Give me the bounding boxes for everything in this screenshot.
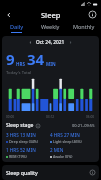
button[interactable]: 3 HRS 13 MIN [6,132,50,144]
staticText: 3 HRS 13 MIN [6,132,36,138]
staticText: HRS [16,61,25,67]
staticText: 06:00 [86,115,95,119]
staticText: Light sleep (46%) [53,139,82,144]
button[interactable]: Monthly [67,22,101,34]
button[interactable]: Previous day [27,39,34,46]
button[interactable]: 2 MIN [50,147,95,159]
staticText: 1 HRS 52 MIN [6,147,36,153]
staticText: Deep sleep (34%) [9,139,38,144]
staticText: 4 HRS 27 MIN [50,132,80,138]
staticText: Weekly [41,23,60,30]
button[interactable]: 4 HRS 27 MIN [50,132,95,144]
staticText: 34 [27,49,45,69]
button[interactable]: Sleep stage info [6,122,40,129]
staticText: 2 MIN [50,147,64,153]
staticText: 9 [6,49,15,69]
staticText: Monthly [73,23,95,30]
staticText: Today's Total [6,70,32,76]
button[interactable]: Weekly [33,22,67,34]
staticText: 03:12 [46,115,55,119]
staticText: 00:21–09:55 [72,123,95,128]
button[interactable]: Information [86,8,99,21]
button[interactable]: Daily [0,22,33,34]
staticText: REM (19%) [9,154,27,159]
staticText: Sleep stage [6,122,34,129]
staticText: Sleep quality [6,169,38,176]
staticText: MIN [46,61,56,67]
staticText: Awake (0%) [53,154,73,159]
staticText: Oct 24, 2021 [36,39,65,46]
staticText: Daily [10,23,24,30]
staticText: Sleep [41,10,61,20]
button[interactable]: Next day [67,39,74,46]
button[interactable]: Sleep quality [2,165,99,180]
button[interactable]: Back [2,8,15,21]
button[interactable]: 1 HRS 52 MIN [6,147,50,159]
staticText: 00:00 [6,115,15,119]
